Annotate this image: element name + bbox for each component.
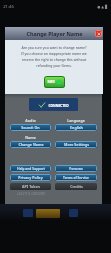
button[interactable]: Help and Support: [10, 165, 51, 172]
staticText: Audio: [25, 118, 36, 123]
staticText: English: [70, 125, 83, 130]
staticText: Forums: [69, 166, 83, 171]
staticText: Name: [25, 135, 36, 140]
button[interactable]: Change Name: [10, 141, 51, 148]
button[interactable]: API Token: [10, 183, 51, 190]
staticText: 500: [47, 79, 55, 85]
staticText: API Token: [22, 184, 40, 189]
staticText: ● ▲ ▊: [97, 4, 108, 9]
button[interactable]: Chat: [69, 209, 78, 217]
button[interactable]: Shop: [23, 209, 33, 217]
button[interactable]: English: [55, 124, 97, 131]
staticText: Help and Support: [17, 167, 45, 171]
button[interactable]: Close: [95, 30, 102, 37]
staticText: 21:46: [3, 4, 14, 10]
staticText: CONNECTED: [48, 103, 69, 107]
button[interactable]: More Settings: [55, 141, 97, 148]
staticText: Sound: On: [21, 125, 40, 130]
staticText: Are you sure you want to change name? If…: [21, 45, 87, 68]
staticText: More Settings: [64, 142, 89, 147]
staticText: Terms of Service: [63, 176, 89, 180]
staticText: Credits: [70, 184, 83, 189]
button[interactable]: Forums: [55, 165, 97, 172]
staticText: Language: [67, 118, 85, 123]
staticText: v14.211.6 (2001200): [17, 192, 45, 196]
button[interactable]: Gems: [36, 209, 60, 218]
button[interactable]: Privacy Policy: [10, 174, 51, 181]
button[interactable]: CONNECTED: [29, 98, 78, 111]
button[interactable]: Credits: [55, 183, 97, 190]
staticText: Change Name: [18, 142, 44, 147]
button[interactable]: Sound: On: [10, 124, 51, 131]
staticText: Privacy Policy: [18, 175, 43, 180]
button[interactable]: 500: [44, 76, 65, 88]
button[interactable]: Terms of Service: [55, 174, 97, 181]
staticText: Change Player Name: [26, 30, 83, 37]
